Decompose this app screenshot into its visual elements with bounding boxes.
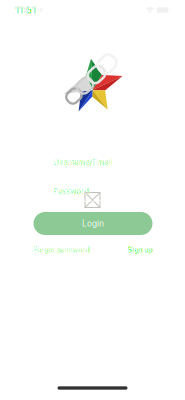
image [84, 192, 100, 208]
staticText: Sign up [127, 246, 152, 254]
button[interactable]: Password [33, 182, 152, 201]
staticText: Forgot password [33, 246, 89, 254]
staticText: Username/Email [53, 158, 112, 167]
staticText: Login [82, 218, 104, 228]
button[interactable]: Sign up [127, 246, 152, 254]
staticText: Password [53, 187, 89, 196]
button[interactable]: Forgot password [33, 246, 89, 254]
staticText: 11:51 [15, 4, 36, 16]
button[interactable]: Login [33, 212, 152, 235]
button[interactable]: Username/Email [33, 153, 152, 172]
